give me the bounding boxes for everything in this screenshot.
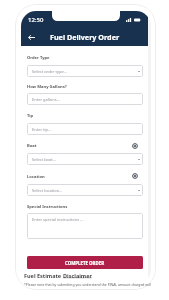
button[interactable]: Enter gallons... xyxy=(27,93,143,105)
staticText: Location xyxy=(27,174,45,180)
staticText: Tip xyxy=(27,113,34,119)
staticText: Fuel Estimate xyxy=(24,272,63,279)
button[interactable]: Select boat... xyxy=(27,153,143,165)
button[interactable]: Back xyxy=(24,30,38,44)
button[interactable]: Add Location xyxy=(130,171,139,180)
staticText: Select boat... xyxy=(32,157,56,162)
staticText: How Many Gallons? xyxy=(27,84,67,90)
button[interactable]: Enter tip... xyxy=(27,123,143,135)
button[interactable]: Add Boat xyxy=(130,141,139,150)
staticText: Fuel Delivery Order xyxy=(50,32,120,42)
staticText: Enter tip... xyxy=(32,127,52,132)
staticText: Special Instructions xyxy=(27,204,68,210)
button[interactable]: Select order type... xyxy=(27,65,143,77)
staticText: COMPLETE ORDER xyxy=(65,260,105,266)
staticText: Select order type... xyxy=(32,69,67,74)
staticText: Boat xyxy=(27,143,37,149)
staticText: Select location... xyxy=(32,188,63,193)
staticText: Enter gallons... xyxy=(32,97,60,102)
staticText: Order Type xyxy=(27,55,50,61)
staticText: Enter special instructions ... xyxy=(32,217,84,222)
button[interactable]: Select location... xyxy=(27,184,143,196)
staticText: *Please note that by submitting you unde… xyxy=(24,282,151,287)
button[interactable]: Enter special instructions ... xyxy=(27,213,143,239)
staticText: Disclaimer xyxy=(63,272,92,279)
button[interactable]: COMPLETE ORDER xyxy=(27,256,143,269)
staticText: 12:50 xyxy=(28,16,44,24)
